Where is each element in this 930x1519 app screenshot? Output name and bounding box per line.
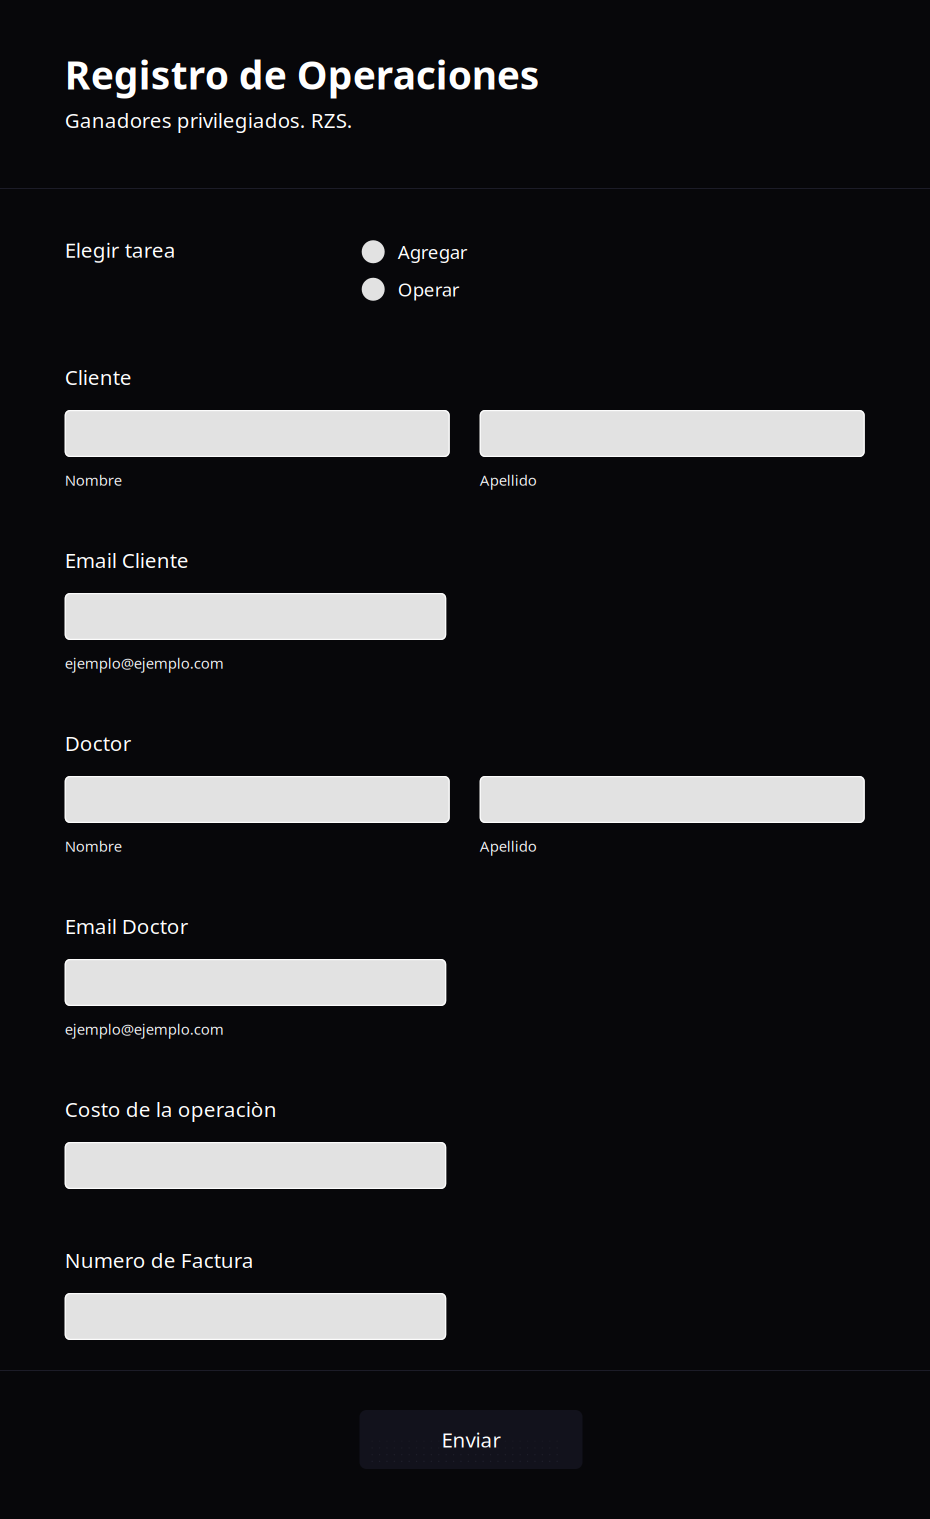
staticText: Apellido (480, 470, 537, 490)
button[interactable]: Operar (362, 270, 592, 308)
staticText: Enviar (441, 1425, 500, 1453)
staticText: Elegir tarea (65, 236, 176, 264)
staticText: ejemplo@ejemplo.com (65, 1019, 224, 1039)
staticText: Nombre (65, 470, 122, 490)
staticText: Apellido (480, 836, 537, 856)
button[interactable]: Email Cliente (65, 593, 446, 640)
button[interactable]: Cliente Nombre (65, 410, 450, 457)
button[interactable]: Doctor Nombre (65, 776, 450, 823)
staticText: ejemplo@ejemplo.com (65, 653, 224, 673)
staticText: Operar (398, 276, 460, 302)
staticText: Email Doctor (65, 912, 189, 940)
button[interactable]: Email Doctor (65, 959, 446, 1006)
staticText: Email Cliente (65, 546, 189, 574)
staticText: Numero de Factura (65, 1246, 254, 1274)
button[interactable]: Cliente Apellido (480, 410, 865, 457)
staticText: Doctor (65, 729, 132, 757)
staticText: Costo de la operaciòn (65, 1095, 277, 1123)
button[interactable]: Numero de Factura (65, 1293, 446, 1340)
button[interactable]: Enviar (359, 1410, 582, 1469)
button[interactable]: Agregar (362, 233, 592, 270)
staticText: Nombre (65, 836, 122, 856)
button[interactable]: Costo de la operaciòn (65, 1142, 446, 1189)
staticText: Agregar (398, 239, 468, 264)
staticText: Ganadores privilegiados. RZS. (65, 106, 353, 134)
staticText: Registro de Operaciones (65, 48, 540, 101)
staticText: Cliente (65, 363, 132, 391)
button[interactable]: Doctor Apellido (480, 776, 865, 823)
